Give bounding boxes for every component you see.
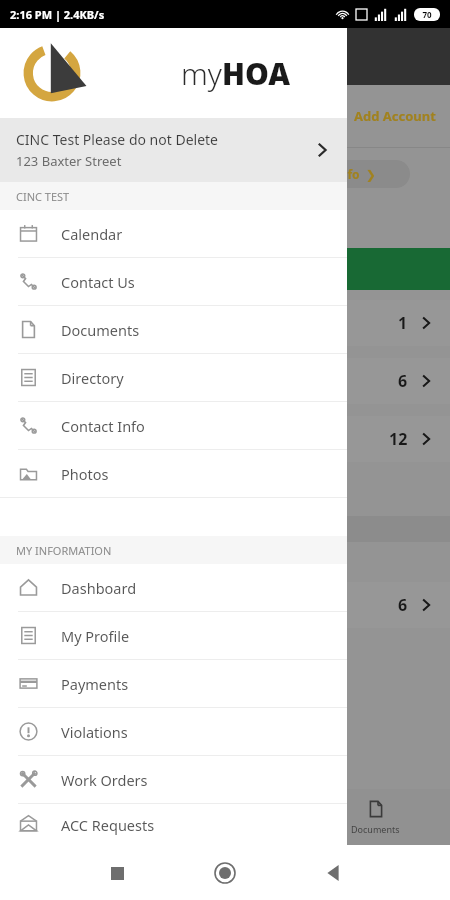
button[interactable]: Documents — [0, 306, 347, 353]
staticText: my — [181, 53, 222, 94]
staticText: Documents — [61, 320, 140, 340]
staticText: Payments — [61, 674, 129, 694]
staticText: Work Orders — [61, 770, 148, 790]
button[interactable]: Recents — [100, 856, 134, 890]
staticText: MY INFORMATION — [16, 543, 112, 558]
button[interactable]: Violations — [0, 708, 347, 755]
button[interactable]: Home — [208, 856, 242, 890]
button[interactable]: My Profile — [0, 612, 347, 659]
button[interactable]: Contact Info — [0, 402, 347, 449]
staticText: My Profile — [61, 626, 130, 646]
staticText: Info ❯ — [335, 166, 376, 182]
button[interactable]: Add Account — [0, 85, 450, 147]
staticText: Violations — [61, 722, 128, 742]
staticText: 70 — [422, 9, 432, 20]
button[interactable]: Directory — [0, 354, 347, 401]
button[interactable]: 12 — [300, 416, 450, 462]
staticText: ACC Requests — [61, 815, 155, 835]
staticText: CINC Test Please do not Delete — [16, 130, 219, 149]
staticText: Documents — [351, 823, 400, 835]
staticText: CINC TEST — [16, 189, 70, 204]
button[interactable]: Back — [316, 856, 350, 890]
staticText: Dashboard — [61, 578, 137, 598]
button[interactable]: 6 — [300, 358, 450, 404]
button[interactable]: 1 — [300, 300, 450, 346]
staticText: Calendar — [61, 224, 123, 244]
staticText: HOA — [222, 53, 291, 94]
button[interactable]: Payments — [0, 660, 347, 707]
button[interactable]: Documents — [341, 799, 410, 835]
button[interactable]: CINC Test Please do not Delete — [0, 118, 347, 182]
button[interactable]: Work Orders — [0, 756, 347, 803]
button[interactable]: 6 — [300, 582, 450, 628]
staticText: Directory — [61, 368, 124, 388]
button[interactable]: Contact Us — [0, 258, 347, 305]
staticText: Photos — [61, 464, 109, 484]
staticText: 6 — [398, 594, 408, 616]
button[interactable]: Dashboard — [0, 564, 347, 611]
staticText: Contact Info — [61, 416, 145, 436]
staticText: Contact Us — [61, 272, 135, 292]
button[interactable]: Photos — [0, 450, 347, 497]
staticText: 2:16 PM | 2.4KB/s — [10, 7, 105, 22]
button[interactable]: ACC Requests — [0, 804, 347, 845]
staticText: 123 Baxter Street — [16, 152, 122, 170]
staticText: 6 — [398, 370, 408, 392]
staticText: 12 — [389, 428, 408, 450]
button[interactable]: Info ❯ — [300, 160, 410, 188]
staticText: Add Account — [354, 107, 436, 125]
button[interactable]: Calendar — [0, 210, 347, 257]
staticText: 1 — [398, 312, 408, 334]
